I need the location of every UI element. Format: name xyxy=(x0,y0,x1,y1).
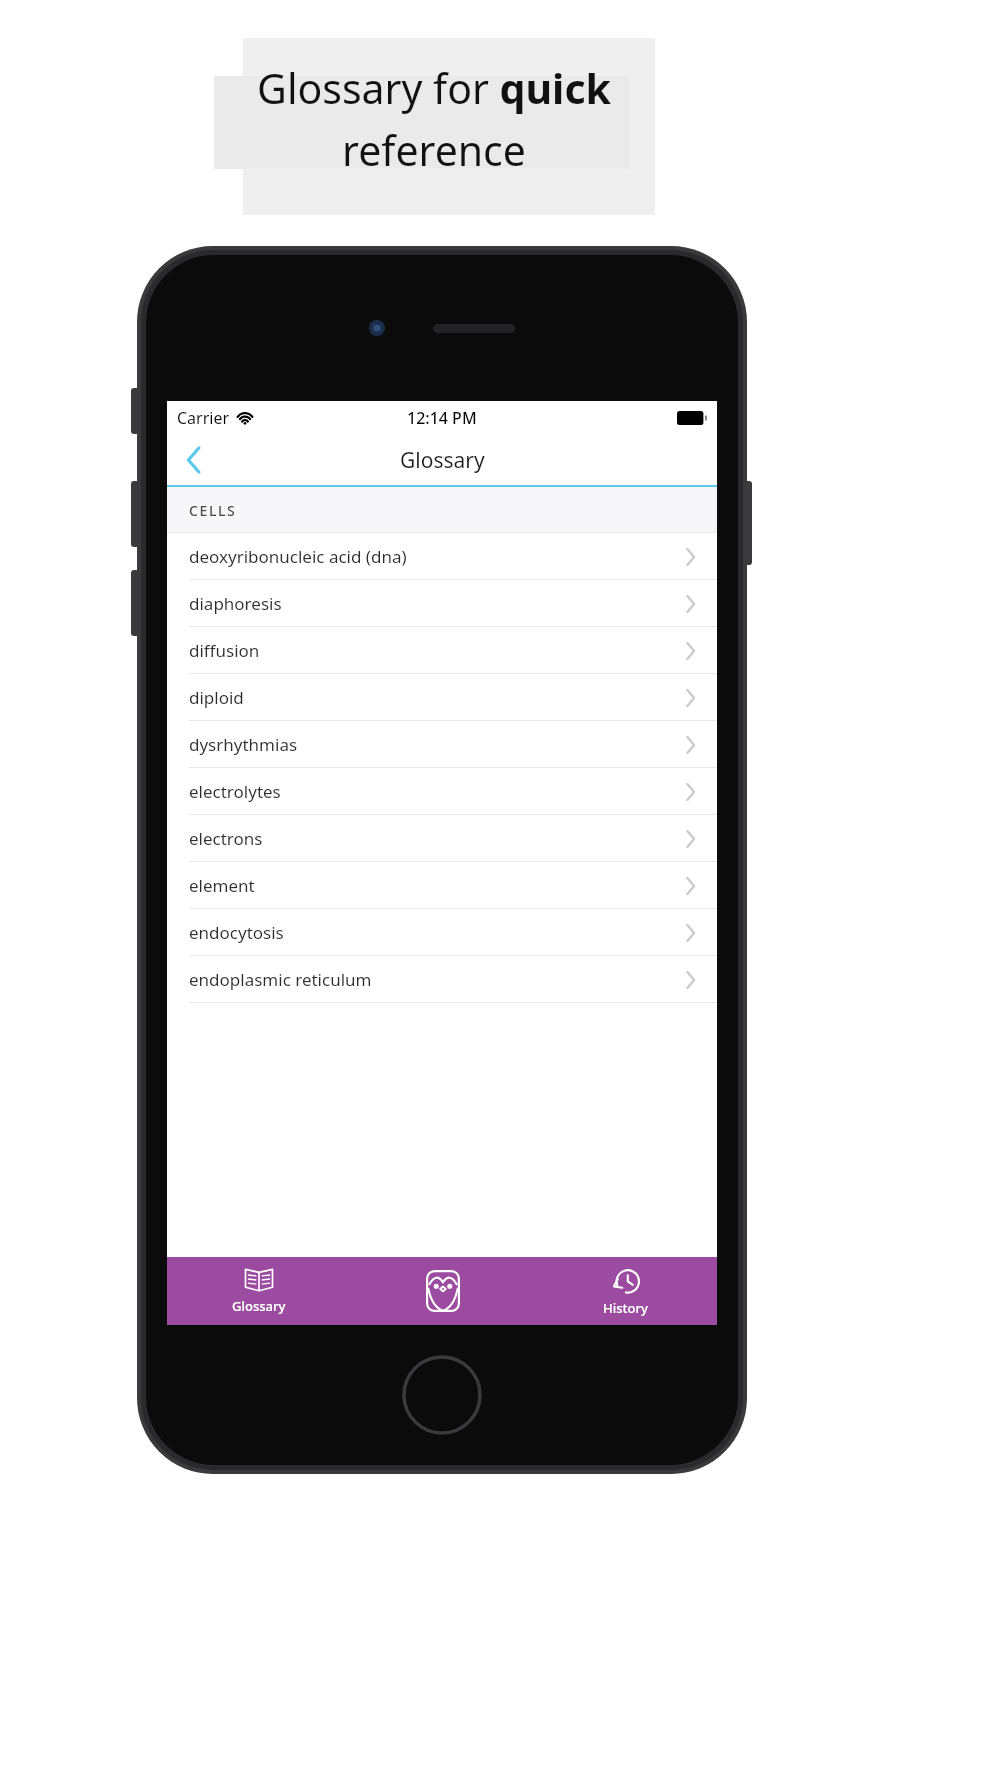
button[interactable]: deoxyribonucleic acid (dna) xyxy=(167,533,717,580)
staticText: diffusion xyxy=(189,639,260,662)
staticText: dysrhythmias xyxy=(189,733,298,756)
staticText: endocytosis xyxy=(189,921,284,944)
button[interactable]: diffusion xyxy=(167,627,717,674)
staticText: Carrier xyxy=(177,407,230,429)
staticText: electrolytes xyxy=(189,780,281,803)
button[interactable]: electrons xyxy=(167,815,717,862)
staticText: electrons xyxy=(189,827,263,850)
staticText: History xyxy=(603,1299,648,1317)
staticText: CELLS xyxy=(189,501,237,520)
staticText: 12:14 PM xyxy=(407,407,477,429)
staticText: diaphoresis xyxy=(189,592,282,615)
button[interactable]: endoplasmic reticulum xyxy=(167,956,717,1003)
button[interactable]: dysrhythmias xyxy=(167,721,717,768)
button[interactable]: electrolytes xyxy=(167,768,717,815)
staticText: Glossary xyxy=(232,1297,286,1315)
button[interactable]: History xyxy=(534,1257,717,1325)
button[interactable]: Glossary xyxy=(167,1257,351,1325)
button[interactable]: Back xyxy=(167,435,221,485)
button[interactable]: endocytosis xyxy=(167,909,717,956)
button[interactable]: Owl xyxy=(351,1257,534,1325)
staticText: Glossary xyxy=(400,446,485,475)
button[interactable]: diaphoresis xyxy=(167,580,717,627)
staticText: endoplasmic reticulum xyxy=(189,968,372,991)
staticText: Glossary for quick reference xyxy=(224,60,644,178)
staticText: deoxyribonucleic acid (dna) xyxy=(189,545,407,568)
staticText: diploid xyxy=(189,686,244,709)
staticText: element xyxy=(189,874,255,897)
button[interactable]: diploid xyxy=(167,674,717,721)
button[interactable]: element xyxy=(167,862,717,909)
